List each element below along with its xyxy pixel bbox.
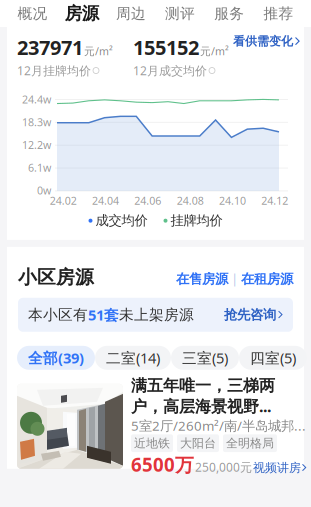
staticText: 51套 [88,305,119,325]
button[interactable]: 满五年唯一，三梯两户，高层海景视野... [17,384,307,469]
staticText: 成交均价 [95,212,147,229]
staticText: 测评 [165,4,195,22]
staticText: 250,000元 [195,459,252,475]
button[interactable]: 二室(14) [95,346,171,370]
staticText: 24.08 [177,193,204,208]
button[interactable]: 周边 [106,4,155,22]
staticText: 元/m² [200,44,229,58]
staticText: 三室(5) [182,348,228,368]
staticText: 6.1w [28,161,51,175]
staticText: 12.2w [22,138,51,152]
staticText: 237971 [17,34,83,61]
button[interactable]: 概况 [8,4,57,22]
button[interactable]: 测评 [155,4,205,22]
staticText: 18.3w [22,115,51,129]
staticText: 155152 [133,34,199,61]
staticText: 近地铁 [134,436,170,450]
staticText: 24.4w [22,92,51,106]
button[interactable]: 在售房源 [176,271,228,287]
staticText: 概况 [18,4,48,22]
staticText: 全部(39) [28,348,84,368]
staticText: 满五年唯一，三梯两户，高层海景视野... [131,376,275,417]
staticText: 12月挂牌均价 [17,63,91,78]
button[interactable]: 看供需变化 [233,34,300,49]
staticText: 本小区有 [28,306,88,324]
staticText: 全明格局 [226,436,274,450]
staticText: | [228,269,241,287]
staticText: 看供需变化 [233,34,293,49]
staticText: 周边 [116,4,146,22]
staticText: 未上架房源 [119,306,194,324]
staticText: 0w [37,183,51,197]
staticText: 挂牌均价 [170,212,222,229]
staticText: 在售房源 [176,271,228,287]
button[interactable]: 全部(39) [17,346,95,370]
staticText: 在租房源 [241,271,293,287]
staticText: 四室(5) [250,348,296,368]
staticText: 小区房源 [18,266,94,289]
button[interactable]: 三室(5) [171,346,239,370]
button[interactable]: 房源 [57,3,106,24]
staticText: 推荐 [263,4,293,22]
staticText: 元/m² [84,44,113,58]
staticText: 房源 [65,3,99,24]
staticText: 24.02 [50,193,77,208]
staticText: 24.06 [134,193,161,208]
staticText: 5室2厅/260m²/南/半岛城邦... [131,417,306,434]
staticText: 24.10 [219,193,246,208]
button[interactable]: 四室(5) [239,346,307,370]
button[interactable]: 推荐 [254,4,303,22]
staticText: 视频讲房 [253,460,301,475]
staticText: 6500万 [131,452,194,477]
staticText: 24.04 [92,193,119,208]
button[interactable]: 服务 [205,4,254,22]
staticText: 抢先咨询 [224,307,276,323]
staticText: 12月成交均价 [133,63,207,78]
staticText: 二室(14) [106,348,160,368]
button[interactable]: 在租房源 [241,271,293,287]
button[interactable]: 本小区有 [18,298,293,332]
staticText: 服务 [214,4,244,22]
staticText: 大阳台 [180,436,216,450]
staticText: 24.12 [261,193,288,208]
